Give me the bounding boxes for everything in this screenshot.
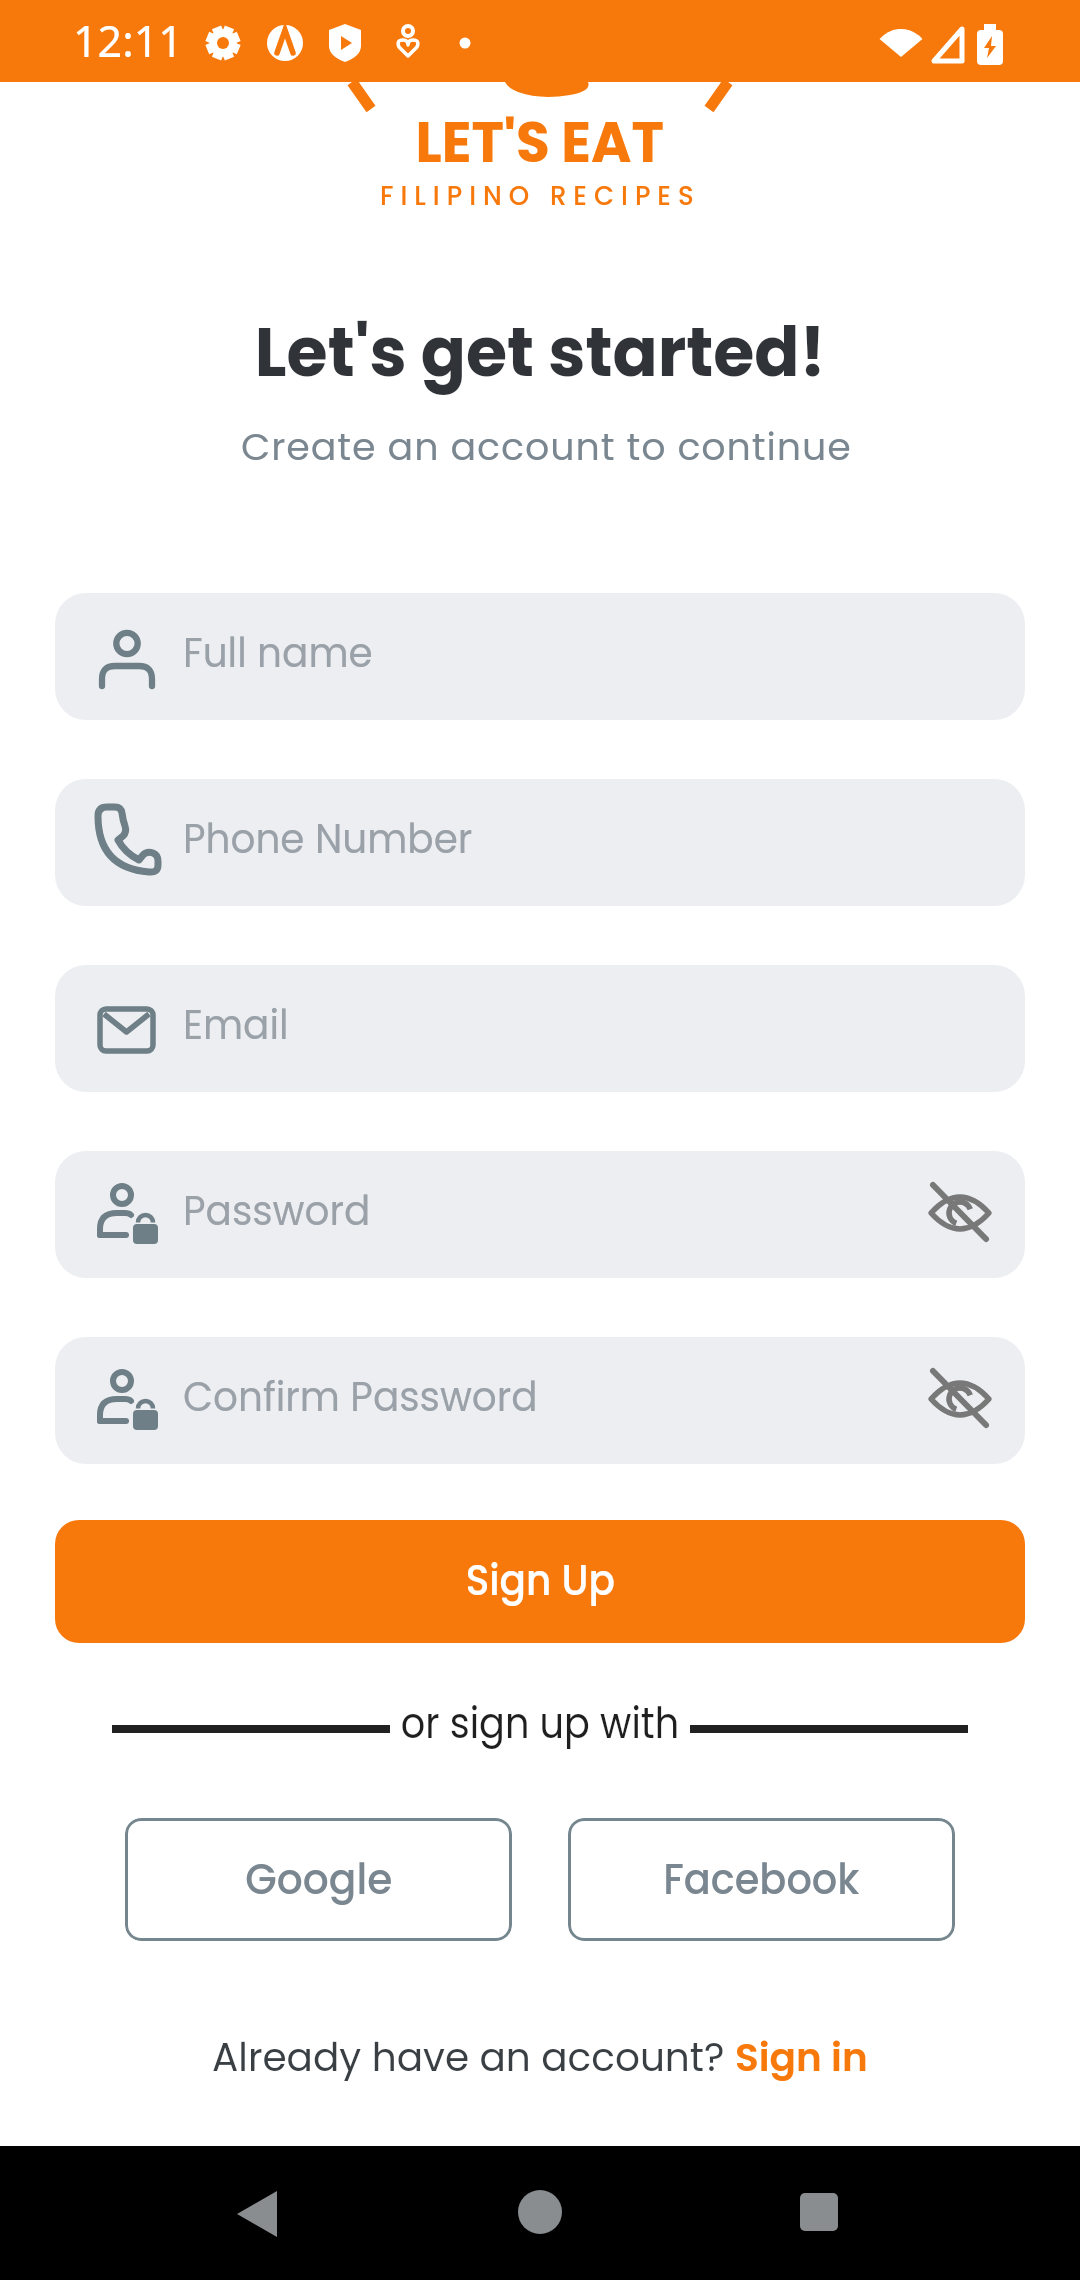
staticText: Google [245,1850,393,1909]
staticText: LET'S EAT [415,103,664,181]
button[interactable]: Google [125,1818,512,1941]
staticText: or sign up with [401,1694,679,1753]
button[interactable]: Phone Number [55,779,1025,906]
staticText: Full name [183,624,373,681]
button[interactable]: Confirm Password [55,1337,1025,1464]
staticText: Let's get started! [255,305,826,400]
staticText: Already have an account? [212,2030,735,2085]
button[interactable]: Password [55,1151,1025,1278]
staticText: Sign Up [466,1551,615,1610]
staticText: Facebook [663,1850,860,1909]
button[interactable]: Sign Up [55,1520,1025,1643]
staticText: FILIPINO RECIPES [380,178,701,214]
button[interactable]: Sign in [735,2030,868,2085]
staticText: Password [183,1182,371,1239]
staticText: Phone Number [183,810,473,867]
staticText: 12:11 [73,11,183,70]
staticText: Create an account to continue [241,420,852,473]
staticText: Confirm Password [183,1368,538,1425]
staticText: Sign in [735,2030,868,2085]
button[interactable]: Full name [55,593,1025,720]
button[interactable]: Facebook [568,1818,955,1941]
button[interactable]: Email [55,965,1025,1092]
staticText: Email [183,996,289,1053]
